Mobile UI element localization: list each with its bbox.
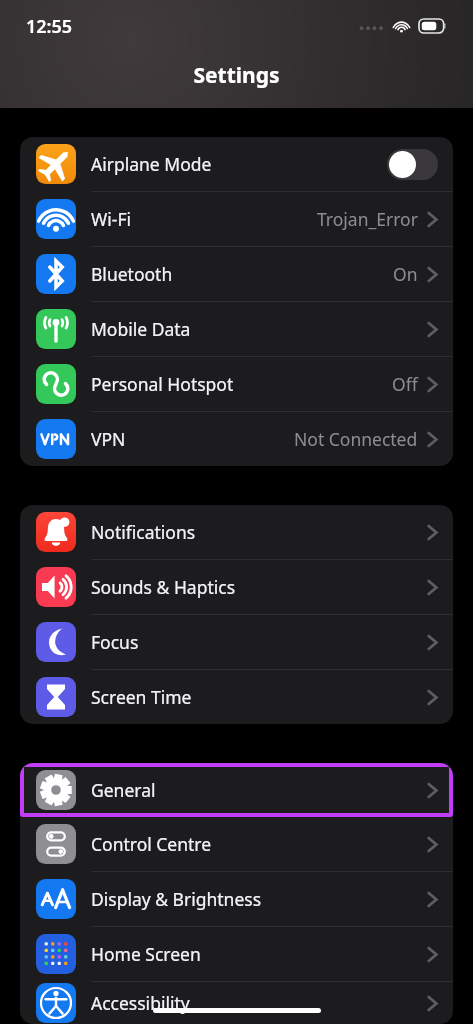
staticText: Wi-Fi <box>91 207 132 231</box>
staticText: Mobile Data <box>91 317 191 341</box>
button[interactable]: Wi-Fi <box>20 192 453 246</box>
staticText: Airplane Mode <box>91 152 212 176</box>
staticText: Screen Time <box>91 685 192 709</box>
button[interactable]: Control Centre <box>20 817 453 871</box>
staticText: Settings <box>193 61 280 90</box>
staticText: General <box>91 778 156 802</box>
staticText: Focus <box>91 630 139 654</box>
staticText: Notifications <box>91 520 196 544</box>
staticText: Display & Brightness <box>91 887 262 911</box>
button[interactable]: Airplane Mode <box>20 137 453 191</box>
button[interactable]: Bluetooth <box>20 247 453 301</box>
button[interactable]: Focus <box>20 615 453 669</box>
button[interactable]: Notifications <box>20 505 453 559</box>
staticText: VPN <box>91 427 126 451</box>
staticText: Home Screen <box>91 942 201 966</box>
staticText: Not Connected <box>294 427 418 451</box>
button[interactable]: Toggle Airplane Mode <box>387 149 438 180</box>
button[interactable]: VPN <box>20 412 453 466</box>
staticText: Trojan_Error <box>317 207 418 231</box>
staticText: Sounds & Haptics <box>91 575 236 599</box>
button[interactable]: Screen Time <box>20 670 453 724</box>
staticText: Accessibility <box>91 991 190 1015</box>
staticText: Off <box>392 372 418 396</box>
button[interactable]: Sounds & Haptics <box>20 560 453 614</box>
button[interactable]: Accessibility <box>20 982 453 1024</box>
staticText: Bluetooth <box>91 262 173 286</box>
button[interactable]: Display & Brightness <box>20 872 453 926</box>
staticText: Control Centre <box>91 832 212 856</box>
staticText: 12:55 <box>26 14 73 39</box>
button[interactable]: Mobile Data <box>20 302 453 356</box>
button[interactable]: Personal Hotspot <box>20 357 453 411</box>
staticText: On <box>393 262 418 286</box>
button[interactable]: General <box>20 763 453 817</box>
staticText: Personal Hotspot <box>91 372 234 396</box>
button[interactable]: Home Screen <box>20 927 453 981</box>
